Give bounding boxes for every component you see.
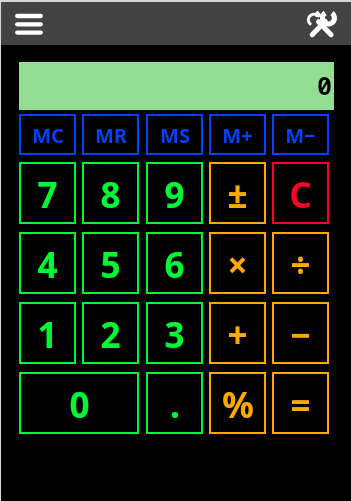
button[interactable]: M+ xyxy=(209,114,266,155)
button[interactable]: . xyxy=(146,372,203,434)
button[interactable]: + xyxy=(209,302,266,364)
staticText: % xyxy=(222,381,254,429)
button[interactable]: Menu xyxy=(2,2,56,45)
button[interactable]: 7 xyxy=(19,162,76,224)
button[interactable]: C xyxy=(272,162,329,224)
button[interactable]: MR xyxy=(82,114,139,155)
button[interactable]: MC xyxy=(19,114,76,155)
staticText: ± xyxy=(227,171,248,219)
button[interactable]: % xyxy=(209,372,266,434)
button[interactable]: Settings xyxy=(296,2,348,45)
staticText: MR xyxy=(95,122,127,149)
button[interactable]: 5 xyxy=(82,232,139,294)
staticText: 6 xyxy=(164,241,185,289)
staticText: 5 xyxy=(100,241,121,289)
button[interactable]: MS xyxy=(146,114,203,155)
staticText: ÷ xyxy=(290,241,311,289)
button[interactable]: 3 xyxy=(146,302,203,364)
staticText: 0 xyxy=(317,68,333,102)
staticText: × xyxy=(227,241,248,289)
button[interactable]: 4 xyxy=(19,232,76,294)
button[interactable]: ÷ xyxy=(272,232,329,294)
button[interactable]: 0 xyxy=(19,372,139,434)
staticText: 3 xyxy=(164,311,185,359)
staticText: 4 xyxy=(37,241,58,289)
staticText: 0 xyxy=(69,381,90,429)
staticText: 1 xyxy=(37,311,58,359)
staticText: MS xyxy=(160,122,190,149)
staticText: MC xyxy=(32,122,64,149)
staticText: 7 xyxy=(37,171,58,219)
staticText: M− xyxy=(285,122,316,149)
button[interactable]: = xyxy=(272,372,329,434)
button[interactable]: × xyxy=(209,232,266,294)
button[interactable]: 2 xyxy=(82,302,139,364)
button[interactable]: 8 xyxy=(82,162,139,224)
staticText: 2 xyxy=(100,311,121,359)
staticText: − xyxy=(290,311,311,359)
button[interactable]: 6 xyxy=(146,232,203,294)
staticText: = xyxy=(290,381,311,429)
staticText: M+ xyxy=(222,122,253,149)
button[interactable]: 9 xyxy=(146,162,203,224)
button[interactable]: 1 xyxy=(19,302,76,364)
button[interactable]: ± xyxy=(209,162,266,224)
staticText: 8 xyxy=(100,171,121,219)
staticText: . xyxy=(170,381,180,429)
staticText: 9 xyxy=(164,171,185,219)
button[interactable]: M− xyxy=(272,114,329,155)
staticText: C xyxy=(289,171,312,219)
button[interactable]: − xyxy=(272,302,329,364)
staticText: + xyxy=(227,311,248,359)
